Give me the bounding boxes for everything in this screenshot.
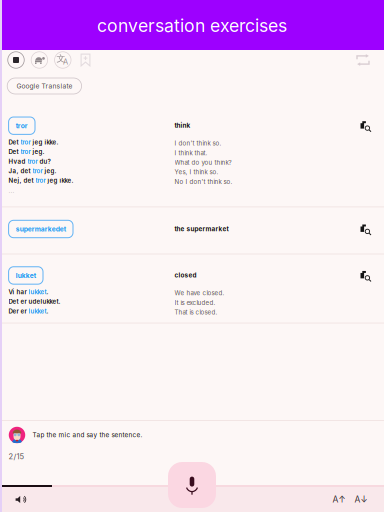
staticText: the supermarket (175, 225, 229, 233)
button[interactable]: Google Translate (7, 78, 82, 94)
staticText: Der er (9, 307, 29, 315)
button[interactable]: Find in text (360, 117, 384, 132)
staticText: lukket (16, 271, 36, 279)
staticText: jeg. (31, 148, 45, 155)
button[interactable]: Decrease text size (350, 488, 372, 510)
staticText: tror (21, 138, 31, 146)
staticText: A↑ (332, 494, 345, 505)
staticText: A (63, 57, 68, 66)
staticText: conversation exercises (97, 15, 287, 36)
staticText: closed (175, 271, 197, 279)
staticText: Tap the mic and say the sentence. (32, 431, 142, 439)
button[interactable]: Find in text (360, 267, 384, 282)
staticText: Det (9, 148, 21, 155)
staticText: That is closed. (175, 308, 218, 316)
button[interactable]: Increase text size (328, 488, 350, 510)
staticText: jeg. (43, 167, 57, 175)
staticText: It is excluded. (175, 299, 216, 306)
button[interactable]: Stop (4, 50, 28, 70)
staticText: jeg ikke. (46, 177, 74, 184)
staticText: Vi har (9, 288, 29, 296)
staticText: Det er udelukket. (9, 298, 61, 305)
staticText: tror (36, 177, 46, 184)
staticText: We have closed. (175, 289, 225, 297)
button[interactable]: Sound (8, 488, 32, 510)
staticText: . (47, 288, 49, 296)
staticText: I don't think so. (175, 140, 222, 147)
button[interactable]: tror (9, 117, 35, 134)
staticText: 2/15 (8, 452, 24, 461)
staticText: Yes, I think so. (175, 168, 219, 176)
staticText: Google Translate (16, 82, 72, 90)
staticText: lukket (29, 288, 47, 296)
staticText: tror (21, 148, 31, 155)
staticText: tror (16, 122, 28, 130)
staticText: think (175, 122, 191, 129)
staticText: ... (9, 186, 15, 194)
staticText: I think that. (175, 149, 208, 157)
staticText: Det (9, 138, 21, 146)
staticText: tror (33, 167, 43, 175)
staticText: tror (28, 158, 38, 165)
staticText: What do you think? (175, 159, 232, 166)
staticText: du? (38, 158, 51, 165)
staticText: jeg ikke. (31, 138, 59, 146)
staticText: Nej, det (9, 177, 36, 184)
button[interactable]: Find in text (360, 220, 384, 235)
button[interactable]: Microphone (168, 462, 216, 508)
button[interactable]: lukket (9, 267, 43, 284)
button[interactable]: Bookmark (74, 50, 96, 70)
staticText: supermarkedet (16, 225, 66, 233)
staticText: Hvad (9, 158, 28, 165)
staticText: 文 (56, 53, 65, 64)
button[interactable]: Slow playback (28, 50, 51, 70)
staticText: Ja, det (9, 167, 33, 175)
staticText: No I don't think so. (175, 178, 233, 185)
staticText: lukket (29, 307, 47, 315)
button[interactable]: supermarkedet (9, 220, 73, 238)
staticText: . (47, 307, 49, 315)
button[interactable]: Translate (51, 50, 74, 70)
button[interactable]: Repeat (352, 50, 374, 70)
staticText: A↓ (354, 494, 367, 505)
